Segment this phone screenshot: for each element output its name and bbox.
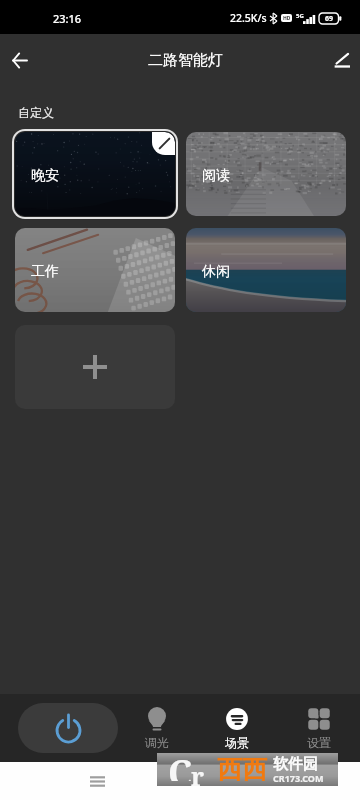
button[interactable]: Back <box>0 38 41 82</box>
staticText: 23:16 <box>53 11 82 26</box>
staticText: 场景 <box>213 735 261 750</box>
staticText: 休闲 <box>202 263 230 281</box>
staticText: 二路智能灯 <box>148 51 223 70</box>
staticText: 工作 <box>31 263 59 281</box>
button[interactable]: 休闲 <box>186 228 346 312</box>
button[interactable]: 场景 <box>213 702 261 754</box>
staticText: C <box>168 748 193 781</box>
staticText: 晚安 <box>31 167 59 185</box>
staticText: 22.5K/s <box>230 11 267 25</box>
staticText: 阅读 <box>202 167 230 185</box>
button[interactable]: 工作 <box>15 228 175 312</box>
staticText: 西西 <box>217 754 267 785</box>
staticText: 调光 <box>133 735 181 750</box>
button[interactable]: Add scene <box>15 325 175 409</box>
button[interactable]: 晚安 <box>15 132 175 216</box>
button[interactable]: Edit <box>322 40 360 80</box>
staticText: 软件园 <box>273 755 318 774</box>
staticText: r <box>191 759 205 792</box>
staticText: 69 <box>325 14 334 24</box>
button[interactable]: Power <box>18 703 118 753</box>
staticText: CR173.COM <box>273 772 324 784</box>
button[interactable]: Edit scene <box>152 132 175 155</box>
staticText: 5G <box>296 12 304 20</box>
staticText: HD <box>283 15 291 22</box>
button[interactable]: 调光 <box>133 702 181 754</box>
button[interactable]: 设置 <box>295 702 343 754</box>
button[interactable]: 阅读 <box>186 132 346 216</box>
staticText: 自定义 <box>18 105 54 120</box>
staticText: 设置 <box>295 735 343 750</box>
